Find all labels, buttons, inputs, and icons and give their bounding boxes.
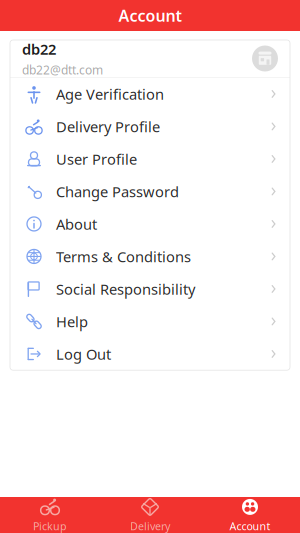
staticText: Delivery Profile	[56, 117, 160, 136]
button[interactable]: Help	[10, 305, 290, 338]
staticText: Log Out	[56, 344, 111, 364]
button[interactable]: About	[10, 208, 290, 240]
button[interactable]: Delivery Profile	[10, 110, 290, 143]
staticText: Account	[118, 5, 181, 26]
staticText: About	[56, 214, 97, 234]
button[interactable]: Pickup	[0, 497, 100, 533]
button[interactable]: Age Verification	[10, 78, 290, 110]
staticText: db22	[22, 39, 56, 59]
button[interactable]: Delivery	[100, 497, 200, 533]
staticText: Terms & Conditions	[56, 247, 191, 266]
staticText: Delivery	[130, 519, 170, 533]
staticText: Social Responsibility	[56, 279, 195, 299]
staticText: Pickup	[33, 519, 67, 533]
staticText: Age Verification	[56, 84, 164, 104]
button[interactable]: Social Responsibility	[10, 273, 290, 305]
button[interactable]: Account	[200, 497, 300, 533]
button[interactable]: Log Out	[10, 338, 290, 370]
button[interactable]: Change Password	[10, 175, 290, 208]
staticText: db22@dtt.com	[22, 62, 103, 78]
button[interactable]: User Profile	[10, 143, 290, 175]
button[interactable]: Terms & Conditions	[10, 240, 290, 273]
staticText: Change Password	[56, 182, 179, 201]
staticText: Help	[56, 312, 88, 331]
staticText: Account	[229, 519, 270, 533]
staticText: User Profile	[56, 149, 137, 169]
